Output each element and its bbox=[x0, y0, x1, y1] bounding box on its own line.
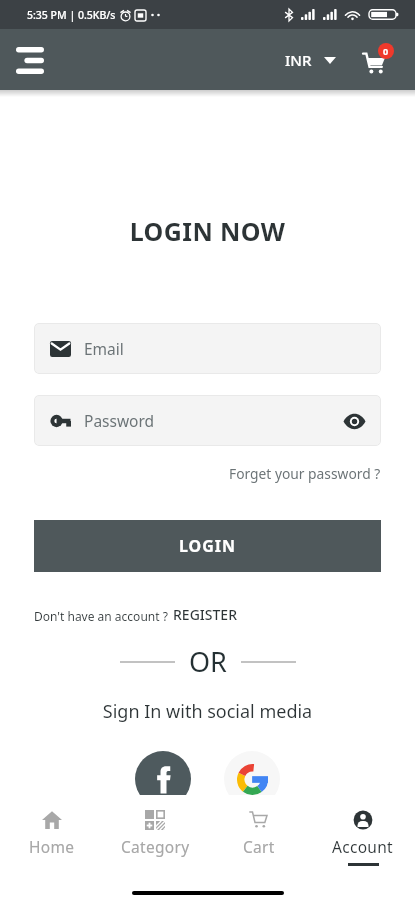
staticText: INR bbox=[285, 50, 312, 70]
staticText: Don't have an account ? bbox=[34, 608, 168, 624]
button[interactable]: Category bbox=[103, 795, 207, 882]
staticText: Category bbox=[121, 836, 190, 857]
button[interactable]: Forget your password ? bbox=[225, 460, 385, 487]
button[interactable]: Email bbox=[34, 323, 381, 374]
staticText: LOGIN NOW bbox=[0, 214, 415, 248]
button[interactable]: Show password bbox=[339, 406, 369, 436]
button[interactable]: Home bbox=[0, 795, 103, 882]
staticText: Sign In with social media bbox=[0, 699, 415, 724]
staticText: Account bbox=[332, 836, 394, 857]
button[interactable]: Sign in with Facebook bbox=[135, 751, 191, 807]
button[interactable]: REGISTER bbox=[173, 605, 237, 624]
button[interactable]: INR bbox=[281, 42, 340, 78]
staticText: 5:35 PM | 0.5KB/s bbox=[27, 8, 116, 22]
button[interactable]: Cart bbox=[354, 39, 396, 81]
button[interactable]: Cart bbox=[207, 795, 311, 882]
button[interactable]: Password bbox=[34, 395, 381, 446]
staticText: Home bbox=[29, 836, 75, 857]
button[interactable]: LOGIN bbox=[34, 520, 381, 572]
staticText: OR bbox=[189, 643, 227, 680]
button[interactable]: Sign in with Google bbox=[224, 751, 280, 807]
staticText: LOGIN bbox=[179, 535, 237, 557]
staticText: 0 bbox=[383, 45, 389, 57]
staticText: Cart bbox=[243, 836, 275, 857]
button[interactable]: Open navigation menu bbox=[6, 36, 54, 84]
staticText: Email bbox=[84, 338, 124, 359]
staticText: Password bbox=[84, 410, 155, 431]
button[interactable]: Account bbox=[311, 795, 415, 882]
